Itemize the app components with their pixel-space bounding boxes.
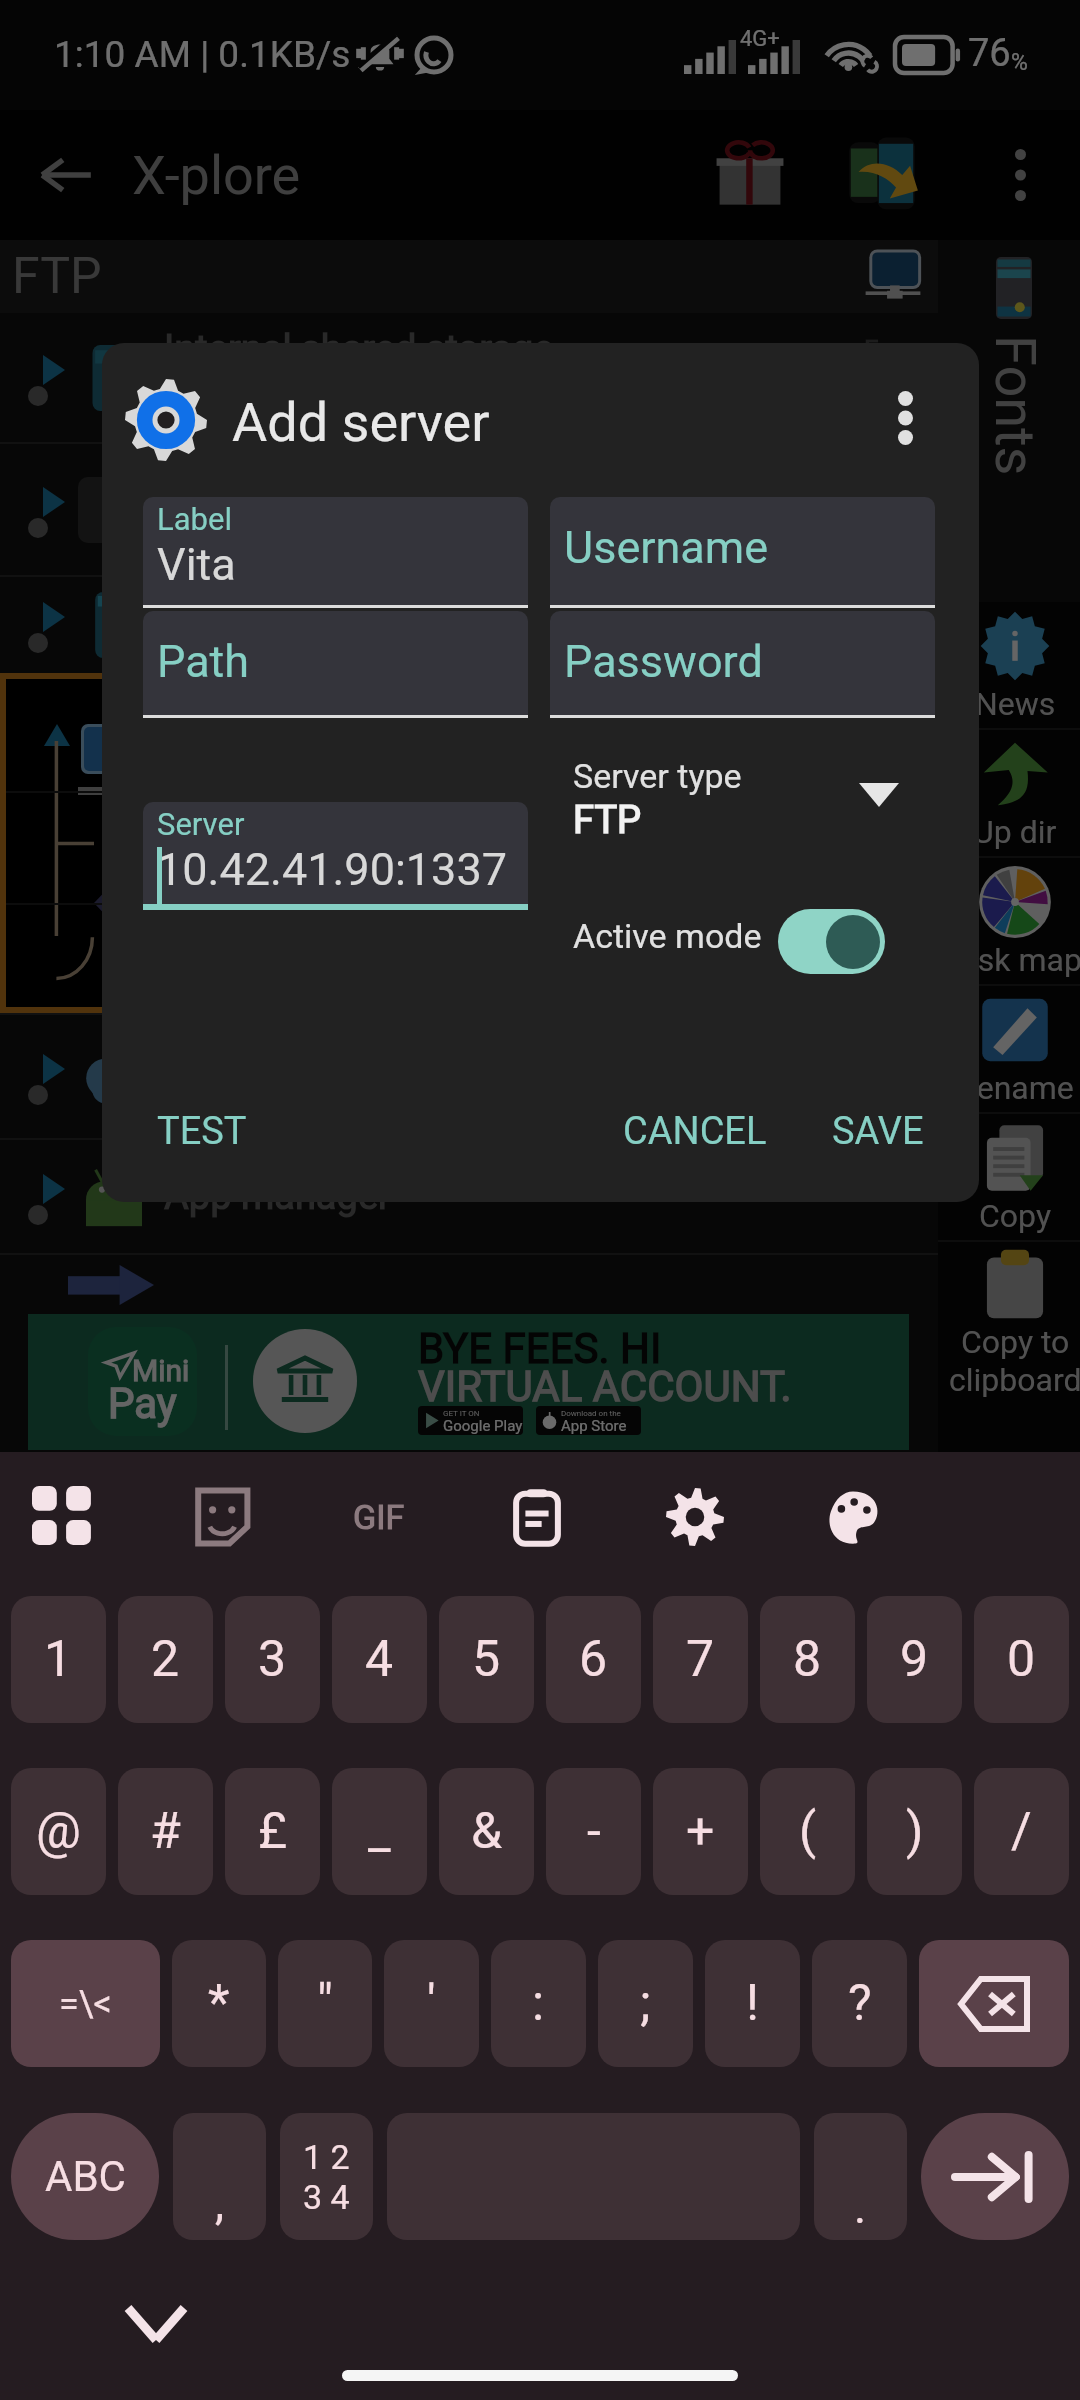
- button[interactable]: .: [814, 2113, 907, 2240]
- button[interactable]: 4: [332, 1596, 427, 1723]
- staticText: BYE FEES. HI: [418, 1324, 662, 1373]
- button[interactable]: Mini: [28, 1314, 909, 1450]
- staticText: GET IT ON: [443, 1409, 480, 1418]
- button[interactable]: Select server type: [839, 755, 919, 835]
- button[interactable]: ?: [812, 1940, 907, 2067]
- staticText: !: [746, 1974, 759, 2033]
- button[interactable]: Internal shared storage: [0, 313, 938, 442]
- button[interactable]: Copy to: [944, 1242, 1080, 1402]
- staticText: clipboard: [949, 1361, 1080, 1399]
- button[interactable]: +: [653, 1768, 748, 1895]
- staticText: 7: [686, 1630, 715, 1689]
- staticText: :: [532, 1974, 545, 2033]
- button[interactable]: ': [384, 1940, 479, 2067]
- staticText: Vita: [157, 538, 236, 591]
- button[interactable]: Back: [26, 135, 106, 215]
- button[interactable]: _: [332, 1768, 427, 1895]
- button[interactable]: [0, 577, 938, 673]
- button[interactable]: [6, 679, 932, 1007]
- button[interactable]: Gift: [700, 125, 800, 225]
- button[interactable]: Share files: [832, 125, 932, 225]
- staticText: (: [799, 1802, 817, 1861]
- button[interactable]: Settings: [648, 1470, 742, 1564]
- button[interactable]: @: [11, 1768, 106, 1895]
- staticText: TEST: [157, 1109, 247, 1154]
- button[interactable]: Server: [143, 802, 528, 910]
- button[interactable]: 2: [118, 1596, 213, 1723]
- button[interactable]: GET IT ON: [418, 1406, 523, 1435]
- button[interactable]: 5: [439, 1596, 534, 1723]
- staticText: Pay: [108, 1379, 177, 1428]
- button[interactable]: Path: [143, 611, 528, 718]
- button[interactable]: Up dir: [944, 730, 1080, 856]
- button[interactable]: Rename: [944, 986, 1080, 1112]
- staticText: Server: [157, 806, 245, 842]
- button[interactable]: Username: [550, 497, 935, 608]
- button[interactable]: More options: [860, 373, 950, 463]
- button[interactable]: [0, 444, 938, 575]
- staticText: 1:10 AM | 0.1KB/s: [54, 33, 351, 76]
- button[interactable]: [919, 1940, 1069, 2067]
- button[interactable]: App manager: [0, 1140, 938, 1253]
- button[interactable]: 6: [546, 1596, 641, 1723]
- button[interactable]: Password: [550, 611, 935, 718]
- button[interactable]: =\<: [11, 1940, 160, 2067]
- button[interactable]: [0, 1015, 938, 1138]
- button[interactable]: 1: [11, 1596, 106, 1723]
- button[interactable]: Clipboard: [490, 1470, 584, 1564]
- button[interactable]: Keyboard layout: [16, 1470, 110, 1564]
- button[interactable]: ): [867, 1768, 962, 1895]
- button[interactable]: TEST: [141, 1095, 263, 1168]
- staticText: Internal shared storage: [164, 327, 554, 372]
- button[interactable]: 0: [974, 1596, 1069, 1723]
- staticText: GIF: [353, 1497, 405, 1537]
- staticText: SAVE: [832, 1109, 924, 1154]
- button[interactable]: ABC: [11, 2113, 159, 2240]
- button[interactable]: Download on the: [536, 1406, 641, 1435]
- staticText: 1 2: [303, 2137, 350, 2177]
- button[interactable]: Fonts: [938, 240, 1080, 602]
- button[interactable]: Theme: [806, 1470, 900, 1564]
- staticText: 2: [151, 1630, 180, 1689]
- button[interactable]: Next: [921, 2113, 1069, 2240]
- staticText: Copy to: [961, 1323, 1070, 1361]
- staticText: X-plore: [132, 144, 301, 207]
- button[interactable]: 7: [653, 1596, 748, 1723]
- staticText: 0: [1007, 1630, 1036, 1689]
- staticText: Disk map: [949, 941, 1080, 979]
- button[interactable]: -: [546, 1768, 641, 1895]
- button[interactable]: #: [118, 1768, 213, 1895]
- button[interactable]: 8: [760, 1596, 855, 1723]
- staticText: Label: [157, 501, 232, 537]
- button[interactable]: 1 2: [280, 2113, 373, 2240]
- staticText: Google Play: [443, 1417, 523, 1435]
- staticText: App Store: [561, 1417, 627, 1435]
- button[interactable]: ;: [598, 1940, 693, 2067]
- button[interactable]: /: [974, 1768, 1069, 1895]
- staticText: Rename: [957, 1069, 1074, 1107]
- button[interactable]: Disk map: [944, 858, 1080, 984]
- button[interactable]: &: [439, 1768, 534, 1895]
- staticText: _: [368, 1802, 391, 1861]
- button[interactable]: *: [172, 1940, 266, 2067]
- button[interactable]: More options: [972, 127, 1068, 223]
- button[interactable]: Active mode toggle: [778, 909, 885, 974]
- button[interactable]: 3: [225, 1596, 320, 1723]
- button[interactable]: £: [225, 1768, 320, 1895]
- button[interactable]: CANCEL: [607, 1095, 783, 1168]
- button[interactable]: !: [705, 1940, 800, 2067]
- button[interactable]: News: [944, 602, 1080, 728]
- button[interactable]: GIF: [332, 1470, 426, 1564]
- staticText: Add server: [232, 391, 490, 454]
- button[interactable]: SAVE: [816, 1095, 940, 1168]
- button[interactable]: ,: [173, 2113, 266, 2240]
- button[interactable]: 9: [867, 1596, 962, 1723]
- staticText: Password: [564, 635, 763, 688]
- button[interactable]: (: [760, 1768, 855, 1895]
- button[interactable]: ": [278, 1940, 372, 2067]
- button[interactable]: :: [491, 1940, 586, 2067]
- button[interactable]: Copy: [944, 1114, 1080, 1240]
- button[interactable]: Label: [143, 497, 528, 608]
- button[interactable]: Stickers: [174, 1470, 268, 1564]
